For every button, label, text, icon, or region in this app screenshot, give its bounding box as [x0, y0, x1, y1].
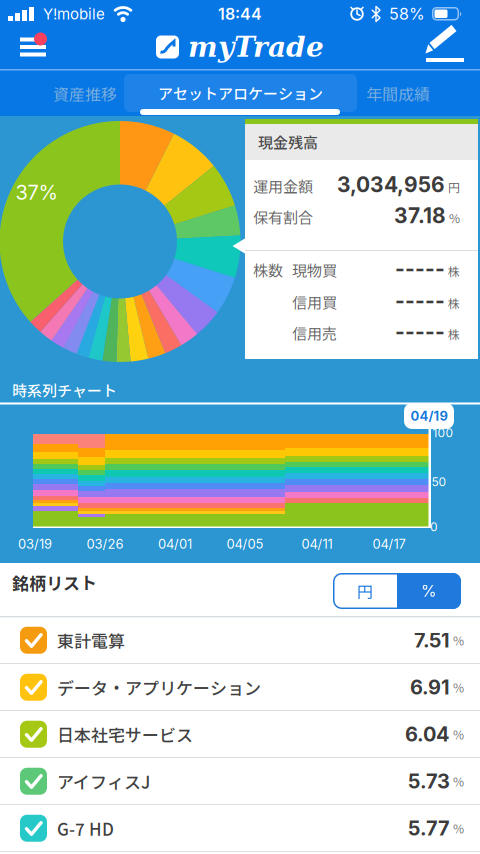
- staticText: %: [421, 581, 437, 601]
- button[interactable]: 東計電算: [0, 617, 480, 663]
- staticText: 時系列チャート: [12, 379, 117, 401]
- staticText: 18:44: [218, 4, 262, 24]
- staticText: 株: [448, 294, 460, 312]
- staticText: 6.04: [405, 722, 450, 746]
- staticText: 03/26: [86, 536, 123, 552]
- button[interactable]: G-7 HD: [0, 805, 480, 851]
- staticText: 5.77: [408, 816, 450, 840]
- staticText: -----: [395, 256, 445, 281]
- button[interactable]: 円: [333, 573, 397, 609]
- staticText: 3,034,956: [337, 172, 445, 197]
- staticText: 運用金額: [253, 175, 313, 197]
- staticText: 銘柄リスト: [12, 570, 97, 595]
- staticText: %: [453, 820, 464, 837]
- staticText: 04/17: [372, 536, 405, 552]
- button[interactable]: [0, 0, 62, 66]
- button[interactable]: アセットアロケーション: [124, 74, 357, 112]
- staticText: 円: [448, 178, 460, 196]
- staticText: 円: [357, 579, 373, 603]
- button[interactable]: 年間成績: [336, 71, 460, 116]
- button[interactable]: 日本社宅サービス: [0, 711, 480, 757]
- button[interactable]: myTrade: [156, 31, 324, 63]
- staticText: Y!mobile: [43, 5, 105, 23]
- button[interactable]: データ・アプリケーション: [0, 664, 480, 710]
- staticText: -----: [395, 288, 445, 313]
- staticText: %: [453, 679, 464, 696]
- staticText: %: [449, 209, 460, 227]
- staticText: 03/19: [18, 536, 52, 552]
- staticText: 東計電算: [57, 628, 125, 652]
- staticText: 04/11: [301, 536, 332, 552]
- staticText: 100: [432, 426, 453, 440]
- staticText: 資産推移: [53, 82, 117, 105]
- staticText: 50: [431, 475, 446, 489]
- staticText: 5.73: [408, 769, 450, 793]
- button[interactable]: [414, 20, 470, 70]
- staticText: 04/01: [158, 536, 192, 552]
- staticText: 信用買: [292, 291, 337, 313]
- staticText: 株: [448, 325, 460, 343]
- staticText: 04/05: [226, 536, 263, 552]
- staticText: %: [453, 726, 464, 743]
- staticText: %: [453, 773, 464, 790]
- staticText: 37%: [15, 180, 57, 205]
- staticText: 信用売: [292, 322, 337, 344]
- staticText: %: [453, 632, 464, 649]
- staticText: アイフィスJ: [57, 769, 150, 793]
- staticText: 現物買: [292, 259, 337, 281]
- button[interactable]: 資産推移: [23, 71, 147, 116]
- staticText: 株: [448, 262, 460, 280]
- staticText: 日本社宅サービス: [57, 722, 193, 746]
- staticText: 保有割合: [253, 206, 313, 228]
- staticText: 株数: [253, 259, 283, 281]
- staticText: 年間成績: [366, 82, 430, 105]
- staticText: データ・アプリケーション: [57, 675, 261, 699]
- staticText: アセットアロケーション: [158, 82, 323, 104]
- staticText: 7.51: [414, 628, 450, 652]
- staticText: -----: [395, 319, 445, 344]
- staticText: 04/19: [410, 408, 447, 424]
- button[interactable]: アイフィスJ: [0, 758, 480, 804]
- staticText: 現金残高: [258, 131, 318, 153]
- button[interactable]: %: [397, 573, 461, 609]
- staticText: 58%: [389, 4, 425, 24]
- staticText: G-7 HD: [57, 816, 114, 840]
- staticText: 0: [430, 520, 438, 534]
- staticText: myTrade: [188, 31, 324, 63]
- staticText: 37.18: [394, 203, 446, 228]
- staticText: 6.91: [410, 675, 450, 699]
